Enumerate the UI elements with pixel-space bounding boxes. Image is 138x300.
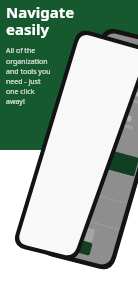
staticText: Navigate easily <box>6 2 75 40</box>
staticText: All of the organization and tools you ne… <box>6 46 53 106</box>
